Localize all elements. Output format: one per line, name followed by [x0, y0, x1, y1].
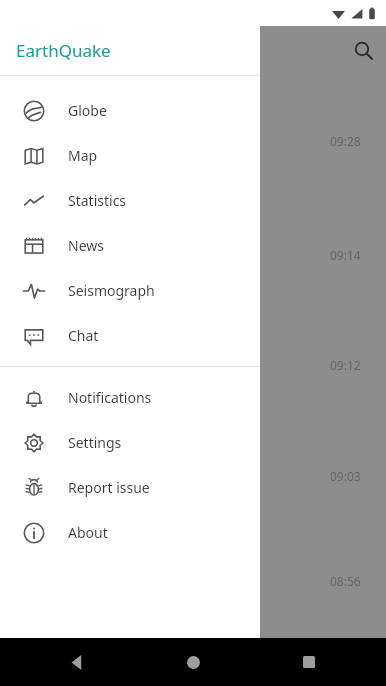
button[interactable]: Report issue	[0, 465, 260, 510]
staticText: Report issue	[68, 478, 150, 497]
button[interactable]: Search	[345, 32, 381, 68]
button[interactable]: Settings	[0, 420, 260, 465]
staticText: About	[68, 523, 108, 542]
button[interactable]: Back	[62, 647, 92, 677]
button[interactable]: Recent apps	[294, 647, 324, 677]
button[interactable]: Map	[0, 133, 260, 178]
staticText: 09:03	[330, 468, 361, 484]
staticText: Map	[68, 146, 98, 165]
staticText: News	[68, 236, 104, 255]
button[interactable]: News	[0, 223, 260, 268]
staticText: Chat	[68, 326, 99, 345]
staticText: 09:14	[330, 247, 361, 263]
staticText: EarthQuake	[16, 39, 111, 62]
button[interactable]: Home	[178, 647, 208, 677]
staticText: 08:56	[330, 573, 361, 589]
staticText: Notifications	[68, 388, 152, 407]
button[interactable]: Globe	[0, 88, 260, 133]
button[interactable]	[0, 26, 386, 638]
staticText: 09:12	[330, 357, 361, 373]
staticText: Settings	[68, 433, 122, 452]
staticText: Globe	[68, 101, 107, 120]
staticText: Seismograph	[68, 281, 155, 300]
button[interactable]: Chat	[0, 313, 260, 358]
button[interactable]: Notifications	[0, 375, 260, 420]
staticText: 09:28	[330, 133, 361, 149]
button[interactable]: Seismograph	[0, 268, 260, 313]
button[interactable]: About	[0, 510, 260, 555]
staticText: Statistics	[68, 191, 127, 210]
button[interactable]: Statistics	[0, 178, 260, 223]
